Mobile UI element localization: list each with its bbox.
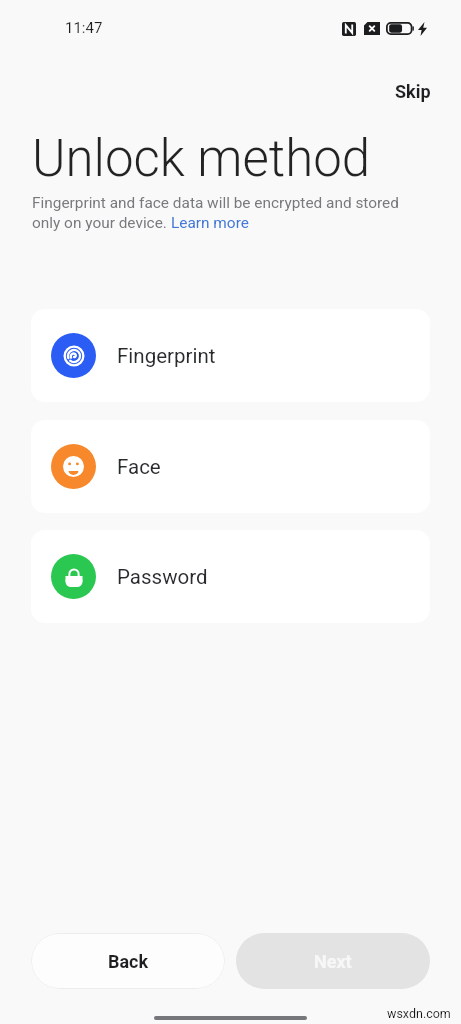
button[interactable]: Back bbox=[31, 933, 225, 989]
button[interactable]: Fingerprint bbox=[31, 309, 430, 402]
other: Charging bbox=[418, 22, 427, 36]
staticText: Unlock method bbox=[32, 129, 371, 189]
other: Battery bbox=[386, 22, 414, 35]
button[interactable]: Face bbox=[31, 420, 430, 513]
other: NFC on bbox=[342, 22, 356, 36]
staticText: Skip bbox=[395, 81, 431, 102]
button[interactable]: Skip bbox=[382, 72, 444, 111]
button[interactable]: Next bbox=[236, 933, 430, 989]
other: No SIM card bbox=[364, 22, 380, 35]
staticText: 11:47 bbox=[65, 19, 103, 37]
staticText: Fingerprint and face data will be encryp… bbox=[32, 194, 399, 231]
button[interactable]: Password bbox=[31, 530, 430, 623]
staticText: wsxdn.com bbox=[387, 1006, 451, 1021]
staticText: Password bbox=[117, 565, 208, 589]
staticText: Face bbox=[117, 455, 161, 479]
button[interactable]: Learn more bbox=[171, 214, 249, 232]
staticText: Learn more bbox=[171, 214, 249, 232]
staticText: Fingerprint bbox=[117, 344, 216, 368]
staticText: Next bbox=[314, 951, 352, 972]
staticText: Back bbox=[108, 951, 149, 972]
